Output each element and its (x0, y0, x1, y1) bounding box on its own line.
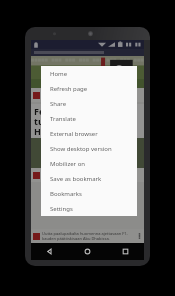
button[interactable]: Refresh page (41, 81, 137, 96)
staticText: Share (50, 100, 67, 108)
button[interactable]: Home (41, 66, 137, 81)
staticText: Kausi jatkuu ensi viikolla. (42, 175, 89, 180)
button[interactable]: Settings (41, 201, 137, 216)
staticText: Uutta paalupaikalta huomenna ajettavaan … (42, 231, 137, 241)
button[interactable]: Share (41, 96, 137, 111)
button[interactable]: Back (31, 243, 68, 260)
staticText: Home (50, 70, 68, 78)
staticText: External browser (50, 130, 98, 138)
button[interactable]: Show desktop version (41, 141, 137, 156)
button[interactable]: Translate (41, 111, 137, 126)
staticText: Bookmarks (50, 190, 82, 198)
button[interactable]: Mobilizer on (41, 156, 137, 171)
button[interactable]: Bookmarks (41, 186, 137, 201)
staticText: Monaco jatkaa kärjessä – voitto (42, 90, 101, 95)
staticText: Show desktop version (50, 145, 112, 153)
staticText: Save as bookmark (50, 175, 102, 183)
button[interactable]: Home (68, 243, 106, 260)
button[interactable]: Save as bookmark (41, 171, 137, 186)
button[interactable]: External browser (41, 126, 137, 141)
staticText: Refresh page (50, 85, 88, 93)
button[interactable]: Recent apps (106, 243, 144, 260)
staticText: Mobilizer on (50, 160, 85, 168)
staticText: Translate (50, 115, 76, 123)
staticText: Ferrarin tulos Hamilton (34, 105, 76, 137)
staticText: Settings (50, 205, 73, 213)
